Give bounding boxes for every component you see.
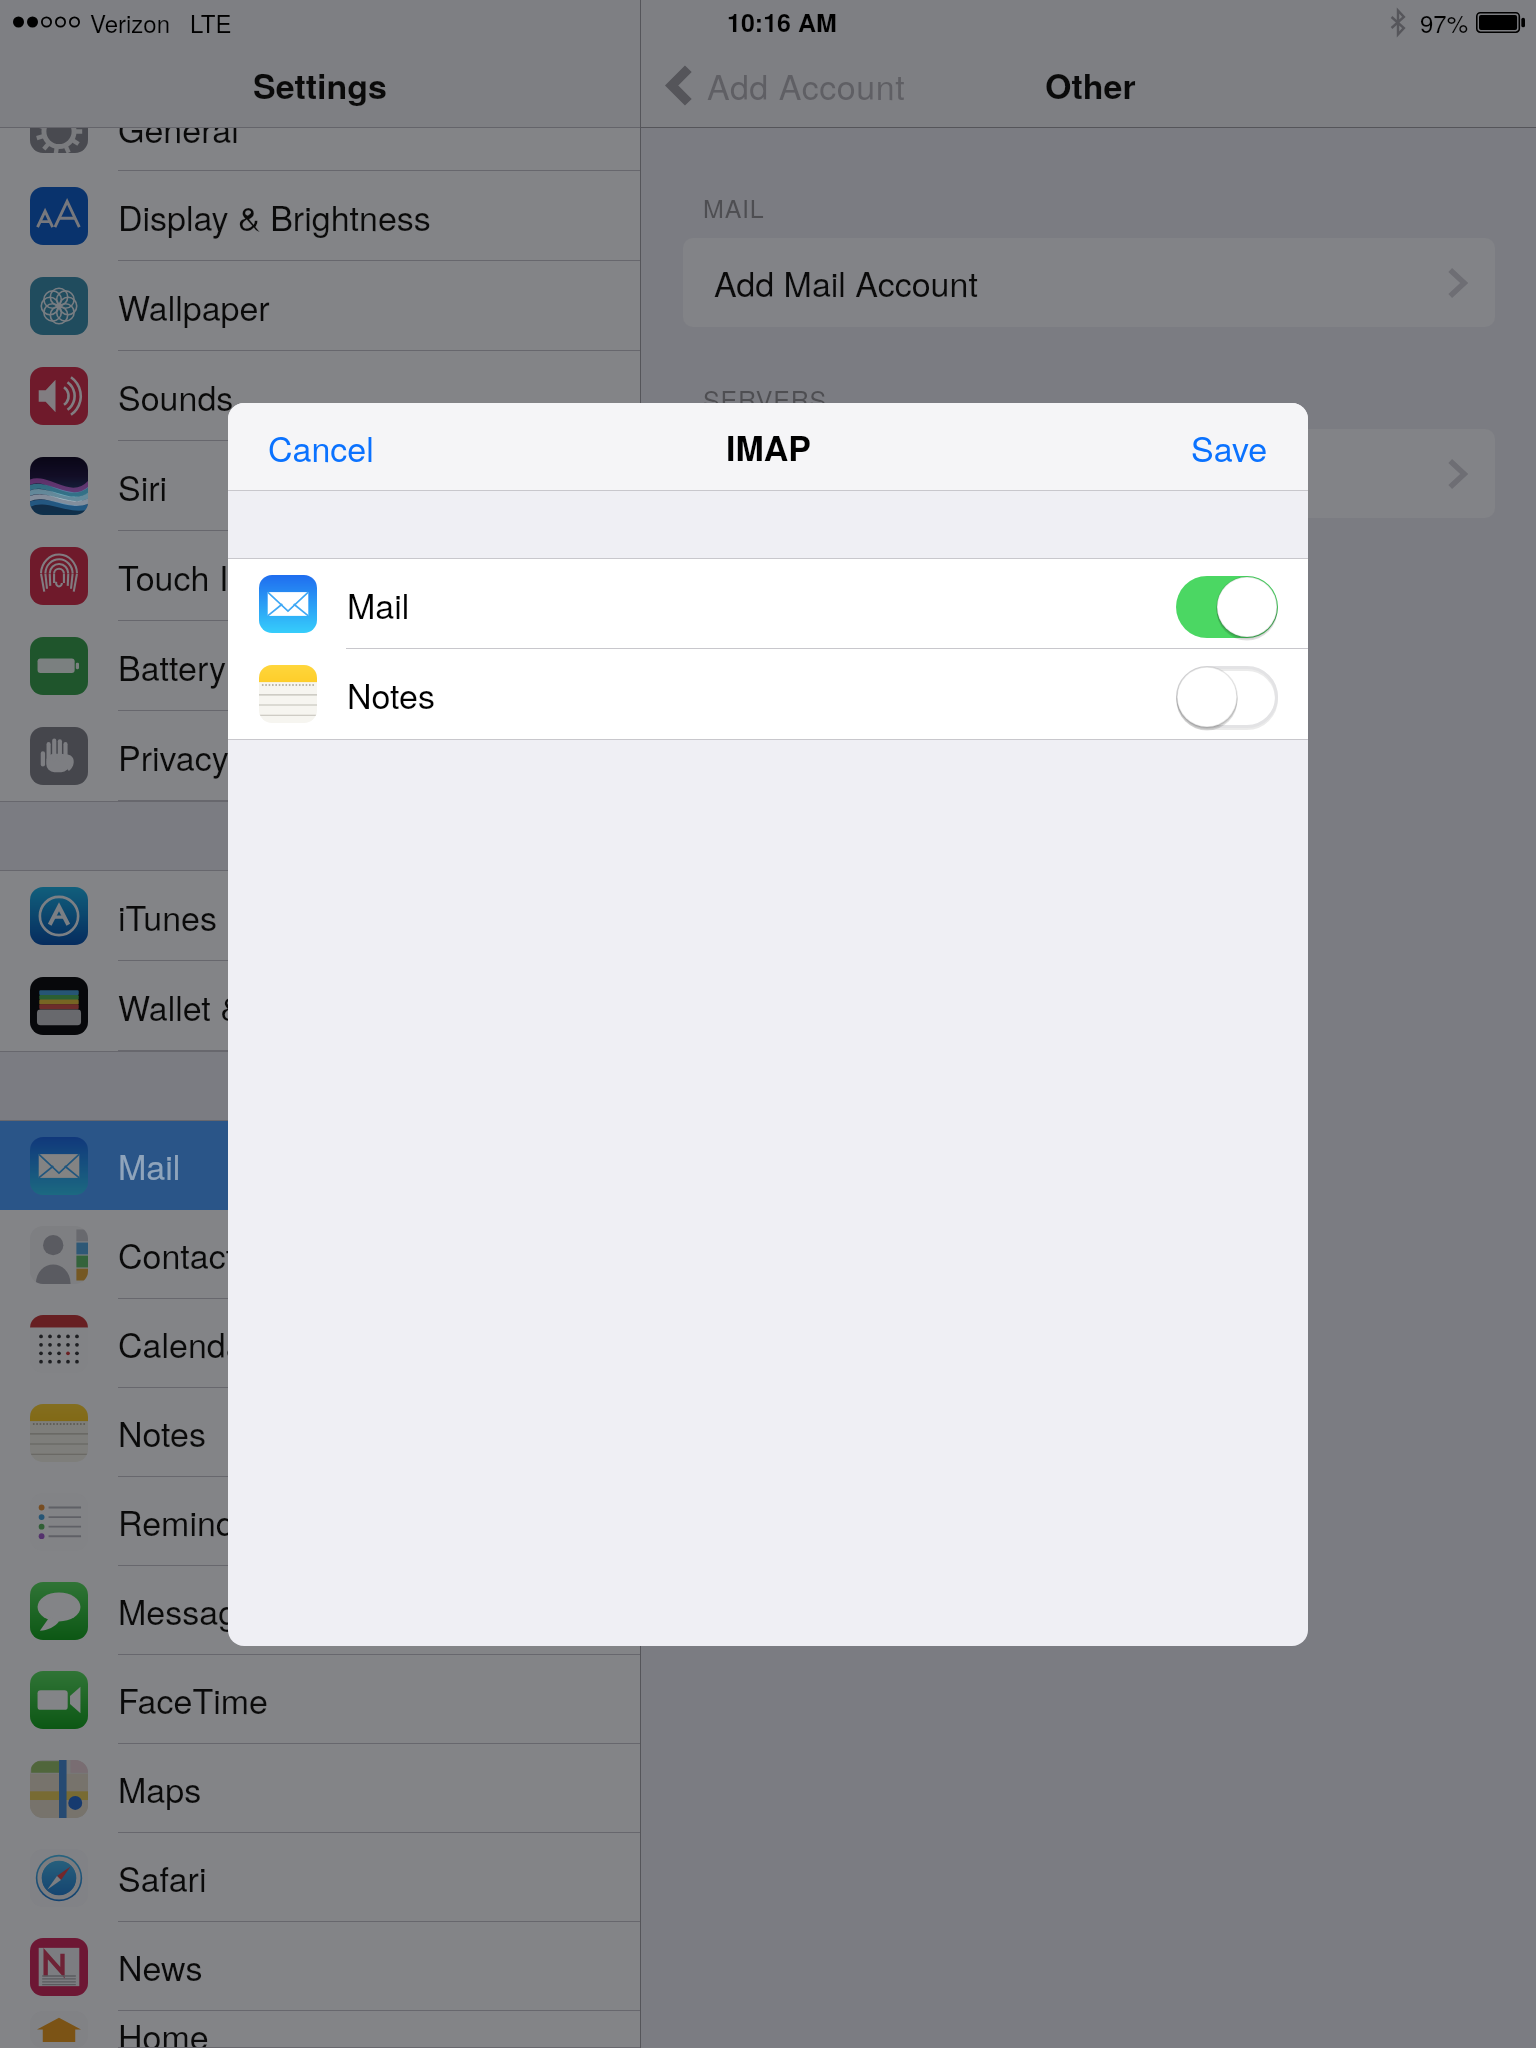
staticText: Privacy bbox=[118, 732, 229, 781]
button[interactable]: Mail bbox=[228, 559, 1308, 649]
staticText: Verizon bbox=[90, 5, 171, 39]
button[interactable]: Messages bbox=[0, 1566, 640, 1655]
staticText: IMAP bbox=[726, 423, 811, 472]
button[interactable]: FaceTime bbox=[0, 1655, 640, 1744]
staticText: Home bbox=[118, 2011, 209, 2048]
staticText: Battery bbox=[118, 642, 227, 691]
button[interactable]: Sounds bbox=[0, 351, 640, 441]
button[interactable]: Add Server bbox=[683, 429, 1495, 518]
staticText: Notes bbox=[347, 670, 435, 719]
button[interactable]: Mail bbox=[0, 1121, 640, 1210]
button[interactable]: Mail on bbox=[1176, 576, 1278, 638]
button[interactable]: Contacts bbox=[0, 1210, 640, 1299]
staticText: News bbox=[118, 1942, 203, 1991]
button[interactable]: Calendar bbox=[0, 1299, 640, 1388]
button[interactable]: General bbox=[0, 128, 640, 171]
staticText: Add Server bbox=[714, 449, 885, 498]
staticText: Notes bbox=[118, 1408, 206, 1457]
button[interactable]: Save bbox=[1185, 411, 1274, 484]
staticText: Add Account bbox=[707, 61, 906, 110]
staticText: 97% bbox=[1420, 5, 1469, 39]
button[interactable]: iTunes & App Store bbox=[0, 871, 640, 961]
button[interactable]: Maps bbox=[0, 1744, 640, 1833]
staticText: Siri bbox=[118, 462, 168, 511]
button[interactable]: Reminders bbox=[0, 1477, 640, 1566]
button[interactable]: Back bbox=[653, 54, 707, 117]
staticText: 10:16 AM bbox=[727, 4, 837, 40]
staticText: Other bbox=[1045, 61, 1136, 110]
staticText: Mail bbox=[118, 1141, 181, 1190]
staticText: SERVERS bbox=[703, 380, 828, 416]
button[interactable]: Touch ID & Passcode bbox=[0, 531, 640, 621]
button[interactable]: Notes off bbox=[1176, 666, 1278, 728]
button[interactable]: Siri bbox=[0, 441, 640, 531]
staticText: LTE bbox=[190, 5, 232, 39]
button[interactable]: Home bbox=[0, 2011, 640, 2048]
staticText: Calendar bbox=[118, 1319, 256, 1368]
staticText: FaceTime bbox=[118, 1675, 268, 1724]
button[interactable]: Wallet & Apple Pay bbox=[0, 961, 640, 1051]
staticText: Touch ID & Passcode bbox=[118, 552, 443, 601]
button[interactable]: Privacy bbox=[0, 711, 640, 801]
button[interactable]: Wallpaper bbox=[0, 261, 640, 351]
staticText: Reminders bbox=[118, 1497, 283, 1546]
staticText: Sounds bbox=[118, 372, 234, 421]
button[interactable]: Display & Brightness bbox=[0, 171, 640, 261]
staticText: General bbox=[118, 128, 239, 147]
staticText: Save bbox=[1191, 423, 1268, 472]
staticText: Add Mail Account bbox=[714, 258, 978, 307]
button[interactable]: Battery bbox=[0, 621, 640, 711]
staticText: Mail bbox=[347, 580, 410, 629]
button[interactable]: Notes bbox=[228, 649, 1308, 739]
staticText: Safari bbox=[118, 1853, 207, 1902]
staticText: Settings bbox=[253, 61, 387, 110]
staticText: Cancel bbox=[268, 423, 374, 472]
staticText: Display & Brightness bbox=[118, 192, 431, 241]
button[interactable]: Add Mail Account bbox=[683, 238, 1495, 327]
staticText: MAIL bbox=[703, 189, 765, 225]
button[interactable]: Notes bbox=[0, 1388, 640, 1477]
staticText: iTunes & App Store bbox=[118, 892, 409, 941]
staticText: Wallet & Apple Pay bbox=[118, 982, 406, 1031]
staticText: Wallpaper bbox=[118, 282, 270, 331]
staticText: Messages bbox=[118, 1586, 273, 1635]
button[interactable]: News bbox=[0, 1922, 640, 2011]
staticText: Contacts bbox=[118, 1230, 253, 1279]
staticText: Maps bbox=[118, 1764, 202, 1813]
button[interactable]: Safari bbox=[0, 1833, 640, 1922]
button[interactable]: Cancel bbox=[262, 411, 380, 484]
